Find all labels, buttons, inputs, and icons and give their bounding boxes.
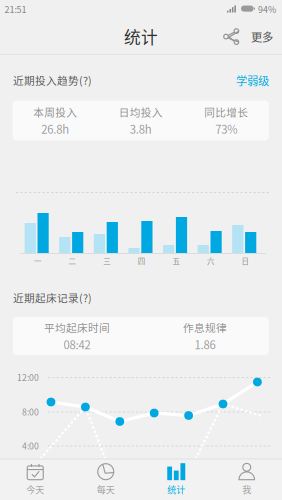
staticText: 每天 bbox=[97, 483, 115, 496]
staticText: 日均投入 bbox=[119, 104, 163, 119]
staticText: 1.86 bbox=[194, 336, 215, 352]
staticText: 一 bbox=[34, 255, 41, 266]
staticText: 26.8h bbox=[41, 120, 69, 137]
staticText: 今天 bbox=[26, 483, 44, 496]
staticText: 我 bbox=[242, 483, 251, 496]
button[interactable]: 统计 bbox=[141, 458, 211, 500]
staticText: 五 bbox=[172, 255, 179, 266]
staticText: 同比增长 bbox=[204, 104, 248, 119]
staticText: 统计 bbox=[167, 483, 185, 496]
staticText: 四 bbox=[138, 255, 145, 266]
staticText: 08:42 bbox=[63, 336, 90, 352]
button[interactable]: 我 bbox=[211, 458, 282, 500]
staticText: 近期起床记录(?) bbox=[13, 290, 92, 305]
staticText: 作息规律 bbox=[183, 320, 227, 335]
button[interactable]: 更多 bbox=[246, 22, 277, 51]
staticText: 3.8h bbox=[130, 120, 152, 137]
staticText: 更多 bbox=[251, 28, 273, 45]
button[interactable]: 每天 bbox=[70, 458, 141, 500]
button[interactable]: 学弱级 bbox=[236, 72, 269, 88]
staticText: 73% bbox=[215, 120, 237, 137]
staticText: 二 bbox=[69, 255, 76, 266]
staticText: 六 bbox=[207, 255, 214, 266]
staticText: 12:00 bbox=[17, 371, 39, 383]
button[interactable]: 今天 bbox=[0, 458, 70, 500]
staticText: 学弱级 bbox=[236, 72, 269, 88]
staticText: 近期投入趋势(?) bbox=[13, 72, 92, 88]
button[interactable]: 分享 bbox=[217, 22, 246, 50]
staticText: 日 bbox=[242, 255, 249, 266]
staticText: 8:00 bbox=[22, 405, 39, 418]
staticText: 94% bbox=[258, 2, 276, 15]
staticText: 统计 bbox=[124, 24, 158, 48]
staticText: 4:00 bbox=[22, 439, 39, 452]
staticText: 21:51 bbox=[4, 2, 26, 15]
staticText: 三 bbox=[103, 255, 110, 266]
staticText: 本周投入 bbox=[33, 104, 77, 119]
staticText: 平均起床时间 bbox=[44, 320, 110, 335]
